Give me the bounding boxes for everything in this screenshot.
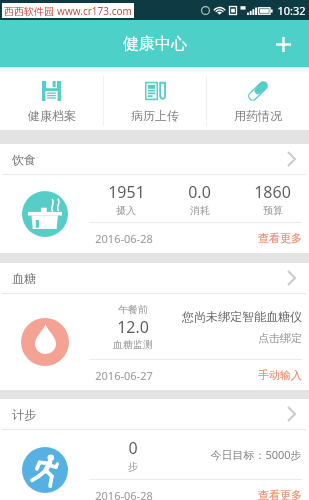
- staticText: www.cr173.com: [57, 4, 132, 18]
- staticText: 病历上传: [131, 108, 179, 123]
- staticText: 1951: [108, 181, 145, 203]
- other: Open 计步: [287, 406, 296, 422]
- button[interactable]: 健康档案: [0, 71, 103, 130]
- staticText: 2016-06-27: [95, 368, 153, 383]
- button[interactable]: 用药情况: [207, 71, 309, 130]
- other: Open 血糖: [287, 270, 296, 286]
- staticText: 0: [128, 437, 138, 459]
- staticText: 点击绑定: [258, 331, 302, 345]
- staticText: 12.0: [117, 316, 149, 338]
- button[interactable]: 病历上传: [104, 71, 206, 130]
- staticText: 午餐前: [118, 303, 148, 316]
- staticText: 预算: [263, 204, 283, 217]
- staticText: 2016-06-28: [95, 231, 153, 246]
- staticText: 0.0: [188, 181, 211, 203]
- staticText: 2016-06-28: [95, 488, 153, 500]
- button[interactable]: Add: [266, 27, 300, 61]
- staticText: 饮食: [12, 152, 36, 167]
- staticText: 用药情况: [234, 108, 282, 123]
- staticText: 10:32: [277, 3, 306, 18]
- staticText: 手动输入: [258, 368, 302, 382]
- staticText: 血糖: [12, 271, 36, 286]
- staticText: 西西软件园: [4, 5, 54, 18]
- staticText: 查看更多: [258, 488, 302, 500]
- staticText: 计步: [12, 407, 36, 422]
- button[interactable]: 点击绑定: [258, 331, 302, 345]
- staticText: 健康中心: [123, 34, 187, 54]
- button[interactable]: 计步: [0, 399, 309, 429]
- staticText: 查看更多: [258, 231, 302, 245]
- staticText: 1860: [254, 181, 291, 203]
- staticText: 您尚未绑定智能血糖仪: [182, 309, 302, 324]
- button[interactable]: 手动输入: [258, 368, 302, 382]
- button[interactable]: 血糖: [0, 263, 309, 293]
- staticText: 消耗: [190, 204, 210, 217]
- button[interactable]: 饮食: [0, 144, 309, 174]
- staticText: 健康档案: [28, 108, 76, 123]
- button[interactable]: 查看更多: [258, 231, 302, 245]
- other: Open 饮食: [287, 151, 296, 167]
- button[interactable]: 查看更多: [258, 488, 302, 500]
- staticText: 今日目标：5000步: [210, 447, 302, 462]
- staticText: 摄入: [116, 204, 136, 217]
- staticText: 步: [128, 460, 138, 473]
- staticText: 血糖监测: [113, 338, 153, 351]
